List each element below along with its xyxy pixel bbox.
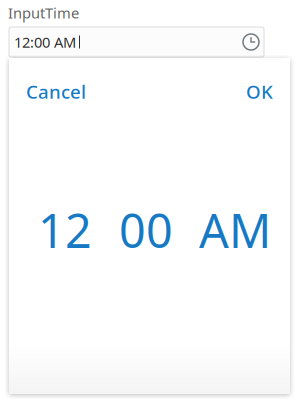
- button[interactable]: Hour: [38, 199, 92, 261]
- staticText: InputTime: [8, 3, 79, 22]
- staticText: 12:00 AM: [14, 32, 76, 52]
- staticText: 00: [119, 199, 173, 261]
- button[interactable]: Cancel: [26, 79, 86, 104]
- button[interactable]: 12:00 AM: [9, 27, 264, 57]
- staticText: Cancel: [26, 79, 86, 104]
- button[interactable]: Minute: [119, 199, 173, 261]
- button[interactable]: AM or PM: [199, 199, 271, 261]
- staticText: OK: [246, 79, 273, 104]
- button[interactable]: OK: [246, 79, 273, 104]
- staticText: 12: [38, 199, 92, 261]
- staticText: AM: [199, 199, 271, 261]
